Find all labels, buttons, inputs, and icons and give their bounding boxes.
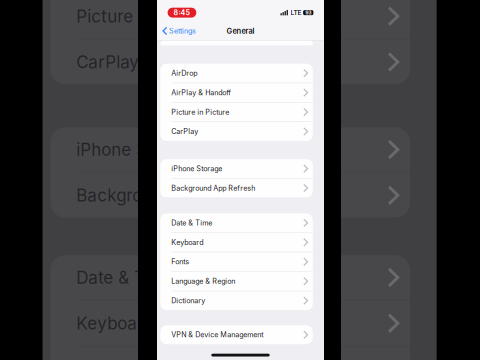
staticText: Keyboard: [171, 238, 203, 247]
staticText: Background App Refresh: [76, 185, 276, 206]
staticText: Settings: [169, 27, 196, 35]
staticText: Dictionary: [171, 296, 205, 305]
staticText: CarPlay: [171, 127, 198, 136]
button[interactable]: Keyboard: [160, 233, 313, 252]
staticText: Fonts: [171, 257, 189, 266]
button[interactable]: Settings: [157, 22, 200, 40]
staticText: AirPlay & Handoff: [171, 88, 231, 97]
button[interactable]: Picture in Picture: [160, 103, 313, 121]
button[interactable]: Language & Region: [160, 272, 313, 291]
button[interactable]: Dictionary: [160, 291, 313, 310]
staticText: Picture in Picture: [171, 108, 229, 116]
button[interactable]: Background App Refresh: [160, 179, 313, 197]
staticText: VPN & Device Management: [171, 330, 263, 339]
staticText: Keyboard: [76, 313, 153, 334]
button[interactable]: Fonts: [160, 252, 313, 271]
staticText: LTE: [290, 9, 301, 17]
button[interactable]: iPhone Storage: [160, 159, 313, 178]
staticText: Picture in Picture: [76, 6, 214, 26]
button[interactable]: CarPlay: [160, 122, 313, 141]
staticText: General: [226, 26, 254, 35]
button[interactable]: AirPlay & Handoff: [160, 83, 313, 102]
staticText: Language & Region: [171, 277, 235, 285]
button[interactable]: Date & Time: [160, 213, 313, 232]
staticText: 93: [305, 9, 311, 16]
staticText: Background App Refresh: [171, 184, 255, 192]
staticText: Date & Time: [171, 218, 212, 227]
staticText: CarPlay: [76, 52, 139, 72]
staticText: Date & Time: [76, 267, 174, 288]
staticText: 8:45: [173, 8, 190, 17]
staticText: AirDrop: [171, 69, 197, 77]
button[interactable]: VPN & Device Management: [160, 325, 313, 344]
staticText: iPhone Storage: [171, 164, 222, 173]
button[interactable]: AirDrop: [160, 64, 313, 83]
staticText: iPhone Storage: [76, 139, 198, 160]
